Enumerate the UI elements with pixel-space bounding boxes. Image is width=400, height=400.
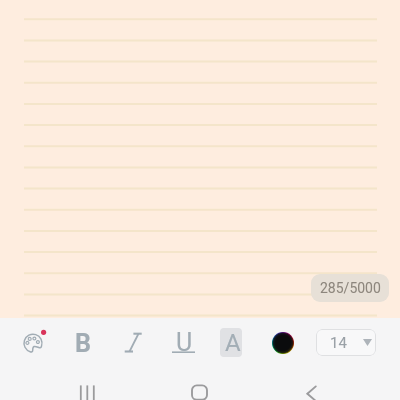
button[interactable]: Text colour (19, 329, 47, 357)
button[interactable]: Home (180, 374, 220, 400)
staticText: 285/5000 (320, 280, 381, 296)
staticText: A (225, 329, 241, 357)
button[interactable]: 14 (316, 329, 376, 356)
button[interactable]: Italic (116, 326, 150, 360)
staticText: U (176, 328, 193, 357)
staticText: 14 (330, 334, 347, 352)
button[interactable]: Text style (220, 328, 242, 357)
button[interactable]: Bold (66, 326, 100, 360)
button[interactable]: Underline (167, 326, 201, 360)
staticText: B (75, 329, 91, 358)
button[interactable]: Pick colour (272, 332, 294, 354)
button[interactable]: Back (291, 374, 331, 400)
button[interactable]: Recents (67, 374, 107, 400)
button[interactable]: 285/5000 (311, 274, 389, 302)
